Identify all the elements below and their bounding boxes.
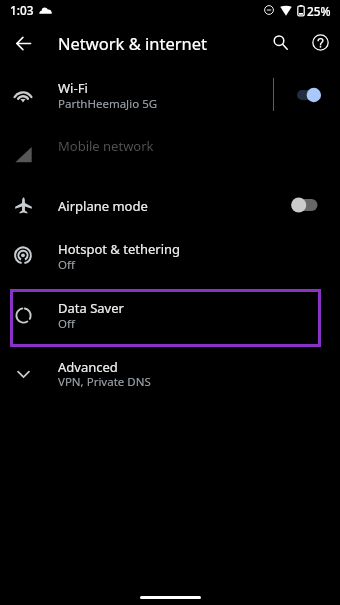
button[interactable]: Back bbox=[6, 26, 40, 60]
button[interactable]: Hotspot & tethering bbox=[0, 231, 340, 283]
staticText: Data Saver bbox=[58, 299, 124, 317]
button[interactable]: Wi-Fi bbox=[0, 70, 340, 122]
staticText: Airplane mode bbox=[58, 197, 148, 215]
staticText: VPN, Private DNS bbox=[58, 374, 151, 390]
staticText: Off bbox=[58, 257, 75, 273]
button[interactable]: Airplane mode toggle bbox=[289, 195, 321, 215]
staticText: Off bbox=[58, 316, 75, 332]
staticText: Advanced bbox=[58, 358, 118, 376]
button[interactable]: Mobile network bbox=[0, 122, 340, 174]
staticText: Wi-Fi bbox=[58, 79, 88, 97]
button[interactable]: Advanced bbox=[0, 349, 340, 401]
staticText: 25% bbox=[307, 3, 331, 19]
staticText: Mobile network bbox=[58, 137, 154, 155]
button[interactable]: Wi-Fi toggle bbox=[295, 85, 323, 105]
button[interactable]: Help bbox=[303, 25, 337, 59]
staticText: Hotspot & tethering bbox=[58, 240, 181, 258]
staticText: ParthHeemaJio 5G bbox=[58, 96, 158, 112]
button[interactable]: Data Saver bbox=[10, 289, 321, 347]
button[interactable]: Search bbox=[263, 25, 297, 59]
staticText: Network & internet bbox=[58, 32, 208, 54]
button[interactable]: Airplane mode bbox=[0, 180, 340, 230]
staticText: 1:03 bbox=[10, 2, 34, 18]
